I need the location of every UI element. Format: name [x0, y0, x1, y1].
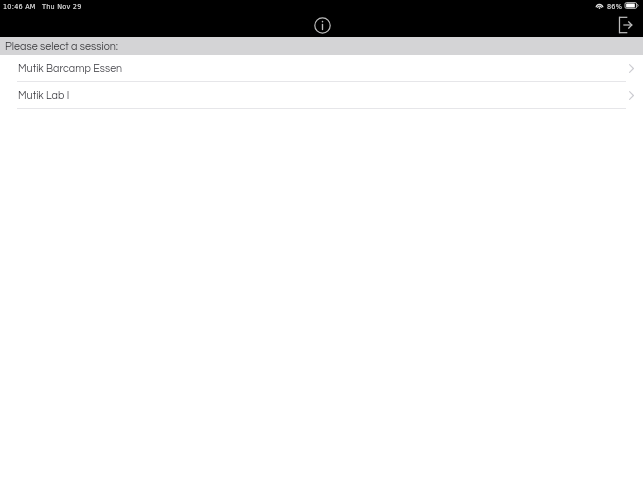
button[interactable]: Mutik Barcamp Essen: [0, 55, 643, 82]
staticText: 10:46 AM: [3, 2, 36, 10]
button[interactable]: Log out: [616, 14, 638, 36]
staticText: Mutik Barcamp Essen: [18, 63, 123, 74]
staticText: Please select a session:: [5, 41, 119, 52]
staticText: 86%: [607, 2, 623, 10]
staticText: Mutik Lab I: [18, 90, 70, 101]
button[interactable]: Please select a session:: [0, 37, 643, 55]
button[interactable]: Info: [311, 14, 333, 36]
button[interactable]: Mutik Lab I: [0, 82, 643, 109]
staticText: Thu Nov 29: [42, 2, 82, 10]
